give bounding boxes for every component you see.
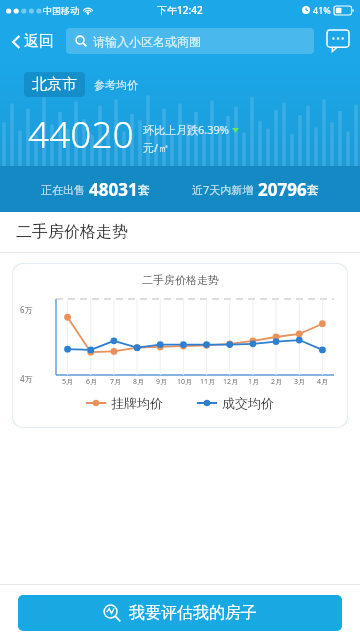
staticText: 挂牌均价	[111, 395, 163, 411]
button[interactable]: 我要评估我的房子	[18, 595, 342, 631]
staticText: 20796	[258, 178, 307, 201]
staticText: 套	[138, 182, 150, 197]
staticText: 成交均价	[222, 395, 274, 411]
staticText: 返回	[24, 32, 54, 51]
staticText: 北京市	[32, 75, 77, 94]
staticText: 二手房价格走势	[142, 273, 219, 287]
staticText: 4万	[20, 373, 33, 384]
staticText: 下午12:42	[157, 3, 203, 17]
staticText: 请输入小区名或商圈	[93, 34, 201, 49]
staticText: 1月	[248, 377, 260, 387]
staticText: 6月	[86, 377, 98, 387]
staticText: 2月	[271, 377, 283, 387]
staticText: 6万	[20, 304, 33, 315]
staticText: 正在出售	[41, 183, 85, 197]
staticText: 12月	[223, 377, 239, 387]
staticText: 4月	[317, 377, 329, 387]
staticText: 11月	[200, 377, 216, 387]
staticText: 41%	[313, 4, 331, 16]
staticText: 近7天内新增	[192, 182, 254, 197]
staticText: 我要评估我的房子	[129, 603, 257, 623]
staticText: 参考均价	[94, 78, 138, 92]
staticText: 中国移动	[43, 5, 79, 16]
button[interactable]: Messages	[324, 27, 352, 55]
staticText: 44020	[28, 108, 134, 158]
button[interactable]: 二手房价格走势	[12, 263, 348, 428]
staticText: 5月	[62, 377, 74, 387]
button[interactable]: 返回	[8, 28, 58, 55]
button[interactable]: 请输入小区名或商圈	[66, 28, 314, 54]
staticText: 48031	[89, 178, 138, 201]
staticText: 元/㎡	[143, 140, 170, 155]
staticText: 9月	[156, 377, 168, 387]
staticText: 10月	[177, 377, 193, 387]
staticText: 7月	[110, 377, 122, 387]
staticText: 8月	[133, 377, 145, 387]
staticText: 3月	[294, 377, 306, 387]
staticText: 环比上月跌6.39%	[143, 122, 229, 137]
staticText: 套	[307, 182, 319, 197]
staticText: 二手房价格走势	[16, 222, 128, 242]
